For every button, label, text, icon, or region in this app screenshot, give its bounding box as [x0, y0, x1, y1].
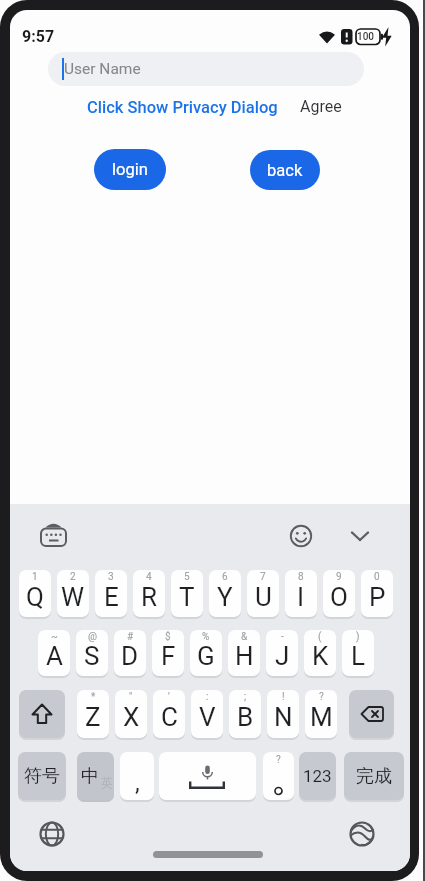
button[interactable]: P: [361, 570, 393, 617]
staticText: :: [206, 691, 209, 703]
staticText: 2: [70, 571, 76, 583]
staticText: *: [91, 691, 96, 703]
button[interactable]: B: [229, 690, 261, 738]
staticText: !: [282, 691, 285, 703]
button[interactable]: S: [76, 630, 108, 676]
button[interactable]: N: [267, 690, 299, 738]
button[interactable]: F: [152, 630, 184, 676]
staticText: W: [61, 582, 85, 612]
staticText: 英: [101, 775, 113, 790]
staticText: D: [121, 641, 139, 671]
button[interactable]: M: [305, 690, 337, 738]
button[interactable]: J: [266, 630, 298, 676]
staticText: -: [281, 631, 284, 643]
button[interactable]: X: [115, 690, 147, 738]
button[interactable]: login: [94, 149, 166, 190]
button[interactable]: [38, 820, 66, 848]
button[interactable]: [159, 752, 256, 800]
staticText: F: [161, 641, 176, 671]
button[interactable]: [348, 820, 376, 848]
button[interactable]: A: [38, 630, 70, 676]
button[interactable]: V: [191, 690, 223, 738]
button[interactable]: D: [114, 630, 146, 676]
button[interactable]: Z: [77, 690, 109, 738]
staticText: 3: [108, 571, 114, 583]
button[interactable]: K: [304, 630, 336, 676]
staticText: O: [330, 582, 348, 612]
button[interactable]: 123: [299, 752, 336, 800]
button[interactable]: 符号: [18, 752, 66, 800]
staticText: T: [179, 582, 195, 612]
staticText: C: [161, 702, 178, 732]
staticText: E: [104, 582, 119, 612]
staticText: L: [351, 641, 366, 671]
button[interactable]: I: [285, 570, 317, 617]
button[interactable]: Q: [19, 570, 51, 617]
staticText: @: [88, 631, 97, 643]
staticText: 5: [184, 571, 190, 583]
button[interactable]: User Name: [48, 52, 364, 86]
staticText: V: [199, 702, 216, 732]
button[interactable]: ?: [263, 752, 294, 800]
staticText: ): [356, 631, 360, 643]
staticText: User Name: [64, 60, 141, 78]
button[interactable]: 中: [77, 752, 114, 800]
button[interactable]: G: [190, 630, 222, 676]
staticText: ,: [135, 769, 140, 797]
button[interactable]: T: [171, 570, 203, 617]
staticText: login: [112, 160, 148, 179]
button[interactable]: [289, 524, 313, 548]
staticText: back: [267, 161, 303, 180]
button[interactable]: back: [250, 150, 320, 190]
staticText: 9: [336, 571, 342, 583]
staticText: ?: [319, 691, 324, 703]
staticText: (: [318, 631, 322, 643]
button[interactable]: U: [247, 570, 279, 617]
button[interactable]: W: [57, 570, 89, 617]
staticText: 8: [298, 571, 304, 583]
button[interactable]: L: [342, 630, 374, 676]
staticText: 0: [374, 571, 380, 583]
staticText: I: [297, 582, 305, 612]
staticText: 7: [260, 571, 266, 583]
button[interactable]: ,: [120, 752, 154, 800]
button[interactable]: C: [153, 690, 185, 738]
staticText: 123: [303, 766, 332, 786]
button[interactable]: R: [133, 570, 165, 617]
button[interactable]: Agree: [300, 97, 342, 116]
staticText: 100: [357, 31, 375, 43]
staticText: J: [275, 641, 290, 671]
staticText: G: [197, 641, 215, 671]
button[interactable]: 完成: [344, 752, 404, 800]
staticText: Y: [217, 582, 233, 612]
staticText: A: [46, 641, 63, 671]
staticText: %: [202, 631, 210, 643]
button[interactable]: [349, 690, 394, 738]
staticText: 完成: [356, 765, 392, 788]
staticText: 4: [146, 571, 152, 583]
button[interactable]: E: [95, 570, 127, 617]
staticText: X: [123, 702, 140, 732]
staticText: 符号: [24, 765, 60, 788]
staticText: &: [241, 631, 248, 643]
staticText: ~: [51, 631, 58, 643]
button[interactable]: [38, 518, 70, 552]
staticText: ': [168, 691, 170, 703]
staticText: 9:57: [22, 27, 55, 46]
button[interactable]: Y: [209, 570, 241, 617]
staticText: #: [127, 631, 134, 643]
staticText: ?: [276, 754, 281, 766]
button[interactable]: Click Show Privacy Dialog: [87, 98, 278, 117]
button[interactable]: [348, 524, 372, 548]
staticText: R: [141, 582, 158, 612]
staticText: S: [84, 641, 100, 671]
staticText: P: [369, 582, 386, 612]
staticText: H: [235, 641, 254, 671]
staticText: K: [312, 641, 329, 671]
button[interactable]: H: [228, 630, 260, 676]
button[interactable]: O: [323, 570, 355, 617]
staticText: ;: [244, 691, 247, 703]
button[interactable]: [19, 690, 65, 738]
staticText: 1: [32, 571, 38, 583]
staticText: 中: [81, 765, 99, 788]
